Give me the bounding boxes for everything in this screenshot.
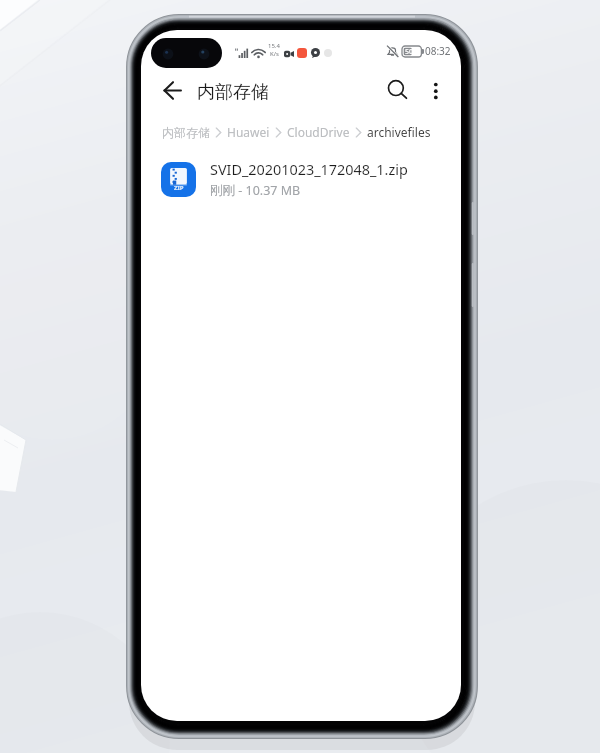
button[interactable]: Search — [382, 73, 410, 101]
button[interactable]: 内部存储 — [162, 125, 210, 140]
staticText: K/s — [270, 50, 279, 58]
staticText: 刚刚 - 10.37 MB — [210, 182, 301, 199]
staticText: 15.4 — [268, 42, 280, 50]
staticText: 内部存储 — [197, 81, 269, 104]
button[interactable]: Back — [158, 74, 186, 102]
staticText: 08:32 — [425, 44, 451, 58]
button[interactable]: Huawei — [227, 124, 270, 140]
button[interactable]: More options — [422, 74, 450, 102]
button[interactable]: archivefiles — [367, 124, 431, 140]
button[interactable]: CloudDrive — [287, 124, 350, 140]
staticText: ZIP — [174, 184, 184, 192]
staticText: SVID_20201023_172048_1.zip — [210, 160, 408, 180]
button[interactable]: ZIP — [141, 153, 461, 205]
staticText: 50 — [405, 47, 414, 57]
